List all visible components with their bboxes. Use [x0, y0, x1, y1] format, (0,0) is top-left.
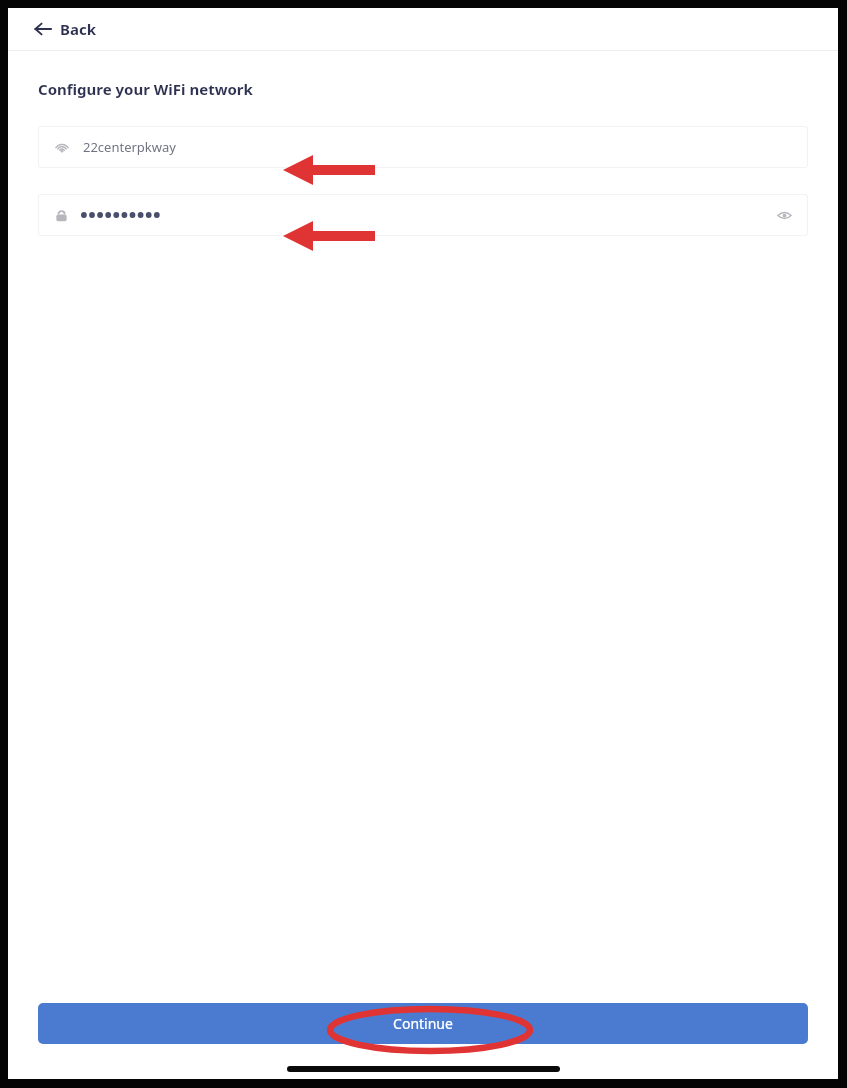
button[interactable]: Back	[30, 15, 101, 43]
button[interactable]: 22centerpkway	[38, 126, 808, 168]
button[interactable]: Show password	[38, 194, 808, 236]
staticText: Continue	[393, 1014, 453, 1033]
button[interactable]: Continue	[38, 1003, 808, 1044]
button[interactable]: Show password	[771, 202, 797, 228]
staticText: Configure your WiFi network	[38, 79, 253, 99]
staticText: 22centerpkway	[83, 138, 176, 156]
staticText: Back	[60, 19, 97, 39]
